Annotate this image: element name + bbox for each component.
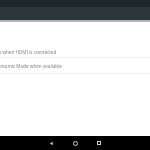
button[interactable]: Home [63,136,87,150]
button[interactable]: Back [39,136,63,150]
staticText: onomic Mode when available [0,63,62,69]
button[interactable]: Recent apps [87,136,111,150]
button[interactable]: s when HDMI is connected [0,46,150,57]
staticText: s when HDMI is connected [0,49,57,55]
button[interactable]: onomic Mode when available [0,58,150,73]
